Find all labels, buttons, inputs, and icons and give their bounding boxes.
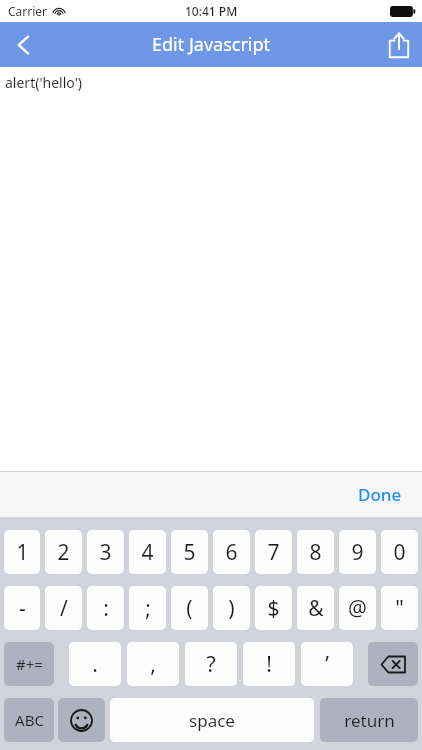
button[interactable]: ( [171,586,208,630]
button[interactable]: 2 [45,530,82,574]
button[interactable]: / [45,586,82,630]
staticText: 0 [393,538,406,567]
staticText: / [60,594,68,623]
button[interactable]: ’ [301,642,353,686]
button[interactable]: Done [352,477,408,512]
staticText: - [19,594,26,623]
button[interactable]: " [381,586,418,630]
staticText: ABC [15,710,44,730]
button[interactable]: . [69,642,121,686]
staticText: 4 [141,538,154,567]
button[interactable]: alert('hello') [0,67,422,471]
staticText: return [344,709,395,732]
button[interactable]: 5 [171,530,208,574]
staticText: Edit Javascript [152,32,271,57]
staticText: #+= [16,654,43,674]
staticText: : [103,594,109,623]
staticText: 1 [16,538,29,567]
staticText: @ [348,594,367,623]
staticText: ) [228,594,235,623]
staticText: , [150,650,156,679]
button[interactable]: ) [213,586,250,630]
staticText: Carrier [8,3,48,19]
staticText: $ [267,594,280,623]
button[interactable]: return [320,698,418,742]
staticText: 3 [99,538,112,567]
staticText: ’ [325,650,329,679]
staticText: ; [145,594,151,623]
staticText: . [92,650,98,679]
button[interactable]: ; [129,586,166,630]
staticText: ! [266,650,272,679]
staticText: 6 [225,538,238,567]
button[interactable]: 7 [255,530,292,574]
staticText: " [395,594,404,623]
button[interactable]: : [87,586,124,630]
button[interactable]: 4 [129,530,166,574]
button[interactable]: Emoji [58,698,105,742]
button[interactable]: Backspace [368,642,418,686]
staticText: ? [206,650,216,679]
staticText: 8 [309,538,322,567]
staticText: 2 [57,538,70,567]
button[interactable]: 8 [297,530,334,574]
button[interactable]: 3 [87,530,124,574]
button[interactable]: Share [376,22,422,67]
button[interactable]: & [297,586,334,630]
staticText: alert('hello') [5,73,82,92]
button[interactable]: #+= [4,642,54,686]
button[interactable]: @ [339,586,376,630]
staticText: 5 [183,538,196,567]
button[interactable]: Back [0,22,48,67]
button[interactable]: ! [243,642,295,686]
staticText: space [189,709,235,732]
button[interactable]: 6 [213,530,250,574]
staticText: 10:41 PM [185,3,238,19]
button[interactable]: ABC [4,698,54,742]
button[interactable]: 9 [339,530,376,574]
staticText: & [308,594,324,623]
button[interactable]: space [110,698,314,742]
button[interactable]: , [127,642,179,686]
button[interactable]: ? [185,642,237,686]
staticText: ( [186,594,193,623]
button[interactable]: - [4,586,40,630]
staticText: Done [358,483,402,506]
staticText: 7 [267,538,280,567]
button[interactable]: $ [255,586,292,630]
button[interactable]: 1 [4,530,40,574]
button[interactable]: 0 [381,530,418,574]
staticText: 9 [351,538,364,567]
